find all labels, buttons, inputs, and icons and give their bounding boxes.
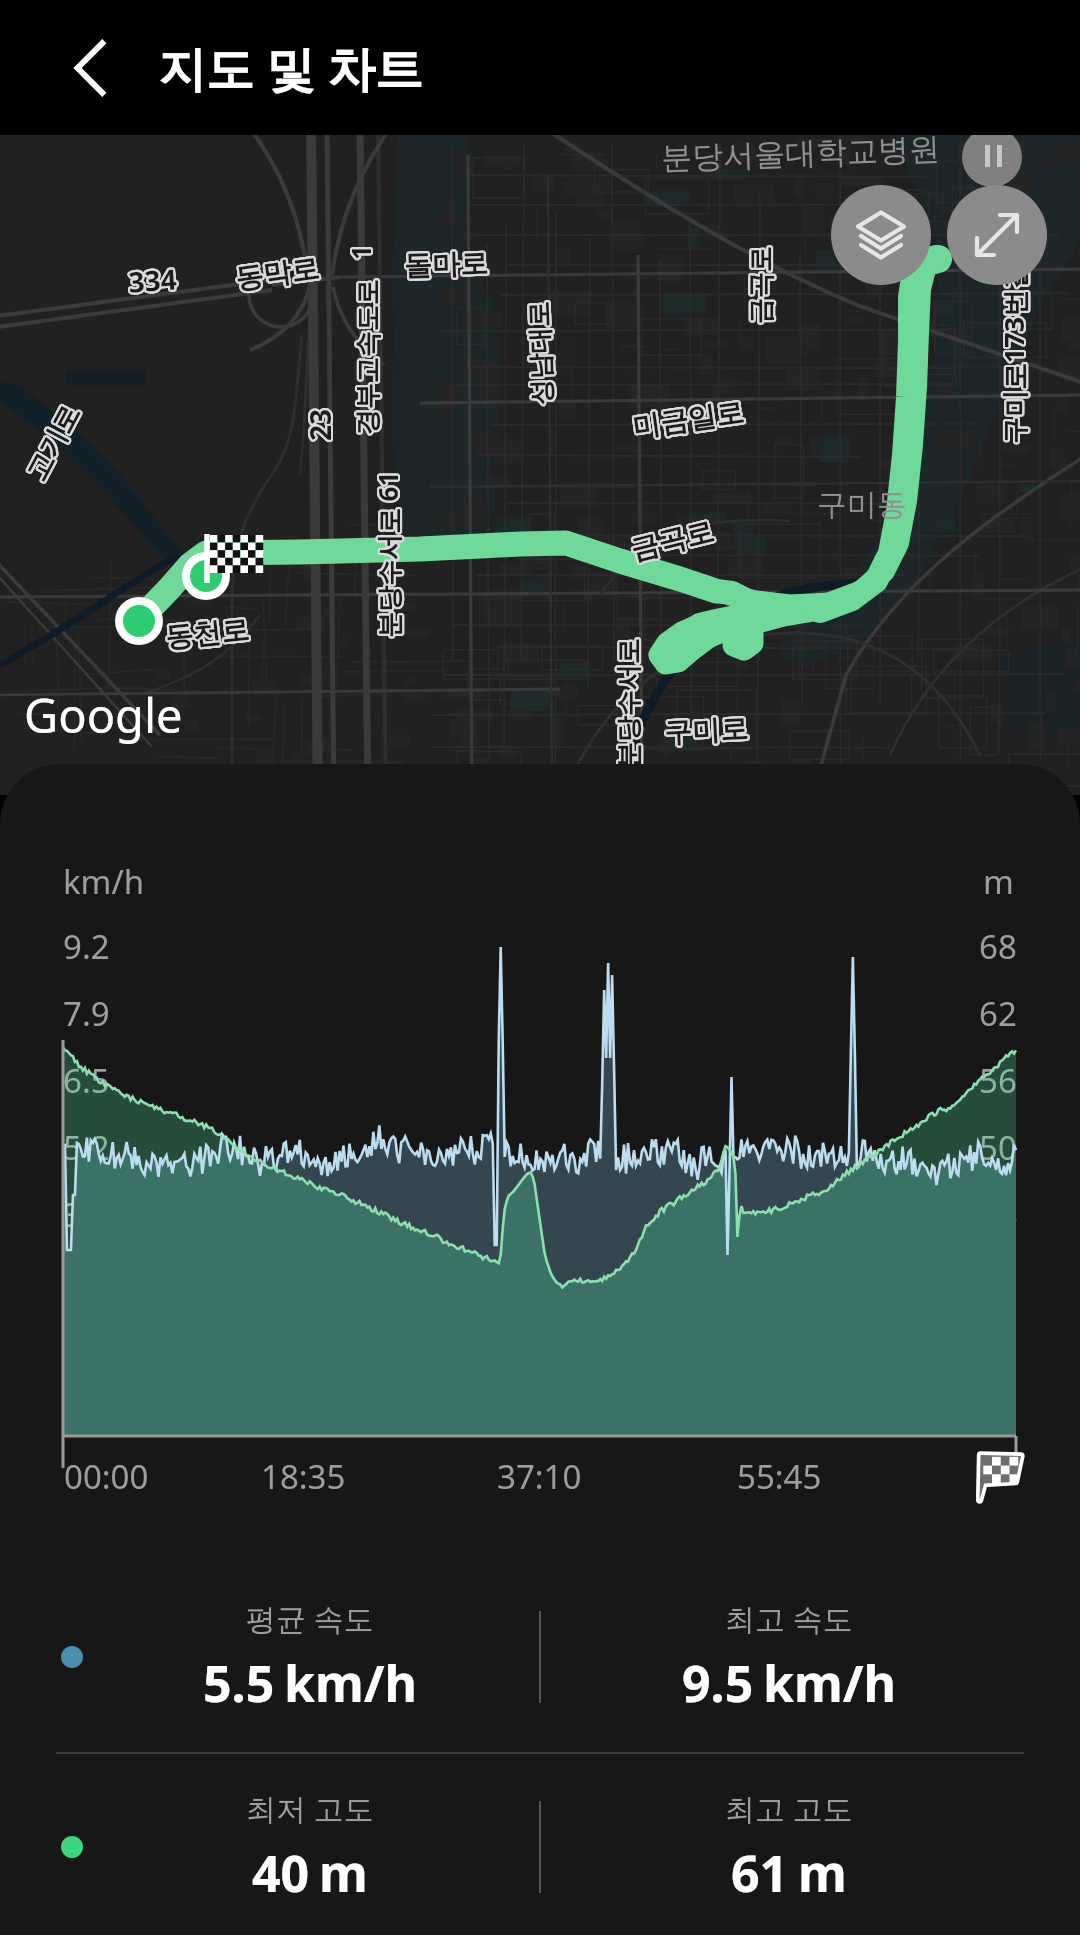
button[interactable]: Back xyxy=(36,13,146,123)
staticText: 50 xyxy=(979,1125,1017,1170)
staticText: 미금일로 xyxy=(628,396,744,446)
staticText: 금곡로 xyxy=(629,514,719,568)
staticText: 경부고속도로 xyxy=(351,281,384,437)
staticText: 성남대로 xyxy=(521,303,557,408)
staticText: 분당수서로 61 xyxy=(371,471,407,638)
staticText: 62 xyxy=(979,991,1017,1036)
staticText: 동천로 xyxy=(165,610,252,654)
staticText: 고기로 xyxy=(18,397,86,484)
staticText: 1 xyxy=(341,246,376,261)
staticText: 334 xyxy=(127,259,178,301)
staticText: 금곡로 xyxy=(629,512,719,566)
staticText: 고기로 xyxy=(20,401,88,489)
staticText: 분당수서로 xyxy=(609,639,642,769)
staticText: 금곡로 xyxy=(742,244,775,322)
staticText: 분당수서로 61 xyxy=(367,471,403,638)
staticText: 금곡로 xyxy=(626,511,716,566)
staticText: 동천로 xyxy=(165,612,253,656)
staticText: 61 xyxy=(731,1839,789,1907)
staticText: 금곡로 xyxy=(625,514,715,568)
staticText: 334 xyxy=(128,261,179,303)
staticText: 23 xyxy=(299,410,337,443)
staticText: 분당수서로 xyxy=(613,639,646,769)
staticText: 경부고속도로 xyxy=(348,279,381,435)
staticText: 5.2 xyxy=(63,1125,110,1170)
button[interactable]: 최고 고도 xyxy=(540,1772,1038,1922)
staticText: 성남대로 xyxy=(523,303,559,408)
staticText: 분당수서로 xyxy=(610,640,643,770)
staticText: 금곡로 xyxy=(741,246,774,324)
staticText: 구미로 xyxy=(661,712,747,751)
staticText: 분당서울대학교병원 xyxy=(660,129,941,178)
staticText: 경부고속도로 xyxy=(349,277,382,433)
staticText: 동막로 xyxy=(235,249,323,295)
staticText: 분당수서로 xyxy=(612,636,645,766)
staticText: 분당수서로 xyxy=(611,638,644,768)
staticText: 돌마로 xyxy=(403,247,489,285)
staticText: 68 xyxy=(979,924,1017,969)
staticText: 분당수서로 61 xyxy=(370,469,406,636)
staticText: 금곡로 xyxy=(627,515,717,570)
staticText: 경부고속도로 xyxy=(349,281,382,437)
staticText: 334 xyxy=(126,257,177,299)
staticText: 23 xyxy=(302,407,340,440)
staticText: 고기로 xyxy=(20,400,88,488)
staticText: 최고 고도 xyxy=(725,1788,853,1829)
staticText: 동막로 xyxy=(231,252,319,298)
button[interactable]: 최저 고도 xyxy=(80,1772,540,1922)
staticText: 고기로 xyxy=(21,399,89,487)
staticText: 미금일로 xyxy=(632,393,748,443)
button[interactable]: 평균 속도 xyxy=(80,1582,540,1732)
button[interactable]: Expand map xyxy=(947,185,1047,285)
staticText: 동천로 xyxy=(165,614,252,657)
button[interactable]: Route map xyxy=(0,135,1080,795)
staticText: 미금일로 xyxy=(630,392,746,443)
staticText: 구미로173번길 xyxy=(994,260,1031,442)
staticText: 00:00 xyxy=(64,1454,149,1499)
staticText: 334 xyxy=(127,261,178,303)
button[interactable]: Map layers xyxy=(831,185,931,285)
staticText: 금곡로 xyxy=(625,515,715,569)
staticText: 구미로173번길 xyxy=(992,261,1029,443)
staticText: 고기로 xyxy=(16,399,84,487)
staticText: 구미로173번길 xyxy=(993,264,1030,446)
staticText: m xyxy=(798,1839,847,1907)
staticText: 37:10 xyxy=(497,1454,582,1499)
staticText: 금곡로 xyxy=(741,247,774,325)
staticText: 동막로 xyxy=(235,250,323,296)
staticText: 분당수서로 xyxy=(611,636,644,766)
staticText: 구미로173번길 xyxy=(992,263,1029,445)
staticText: 고기로 xyxy=(17,397,85,485)
staticText: 1 xyxy=(345,245,380,260)
staticText: 1 xyxy=(343,245,378,260)
staticText: 돌마로 xyxy=(405,244,491,282)
staticText: 성남대로 xyxy=(522,303,558,408)
button[interactable]: 최고 속도 xyxy=(540,1582,1038,1732)
staticText: 금곡로 xyxy=(741,245,774,323)
staticText: 구미로 xyxy=(663,709,749,748)
staticText: 분당수서로 61 xyxy=(370,473,406,640)
staticText: 1.3 xyxy=(63,1326,110,1371)
staticText: 23 xyxy=(302,409,340,442)
staticText: 동천로 xyxy=(164,614,251,657)
staticText: 최고 속도 xyxy=(725,1598,853,1639)
staticText: 구미로173번길 xyxy=(996,263,1033,445)
staticText: 고기로 xyxy=(17,401,85,488)
staticText: 1 xyxy=(343,243,378,258)
staticText: 1 xyxy=(343,247,378,262)
staticText: 구미로173번길 xyxy=(993,260,1030,442)
staticText: 구미로 xyxy=(665,712,751,751)
staticText: 분당수서로 xyxy=(611,640,644,770)
staticText: 경부고속도로 xyxy=(352,280,385,436)
staticText: 334 xyxy=(128,257,179,299)
staticText: 23 xyxy=(301,410,339,443)
staticText: 1 xyxy=(345,244,380,259)
staticText: km/h xyxy=(763,1649,896,1717)
staticText: 334 xyxy=(125,258,176,300)
staticText: 구미로 xyxy=(661,710,747,749)
staticText: 9.5 xyxy=(682,1649,754,1717)
staticText: 미금일로 xyxy=(632,395,748,445)
staticText: 미금일로 xyxy=(630,394,746,445)
staticText: 분당수서로 xyxy=(613,638,646,768)
staticText: 23 xyxy=(302,408,340,441)
